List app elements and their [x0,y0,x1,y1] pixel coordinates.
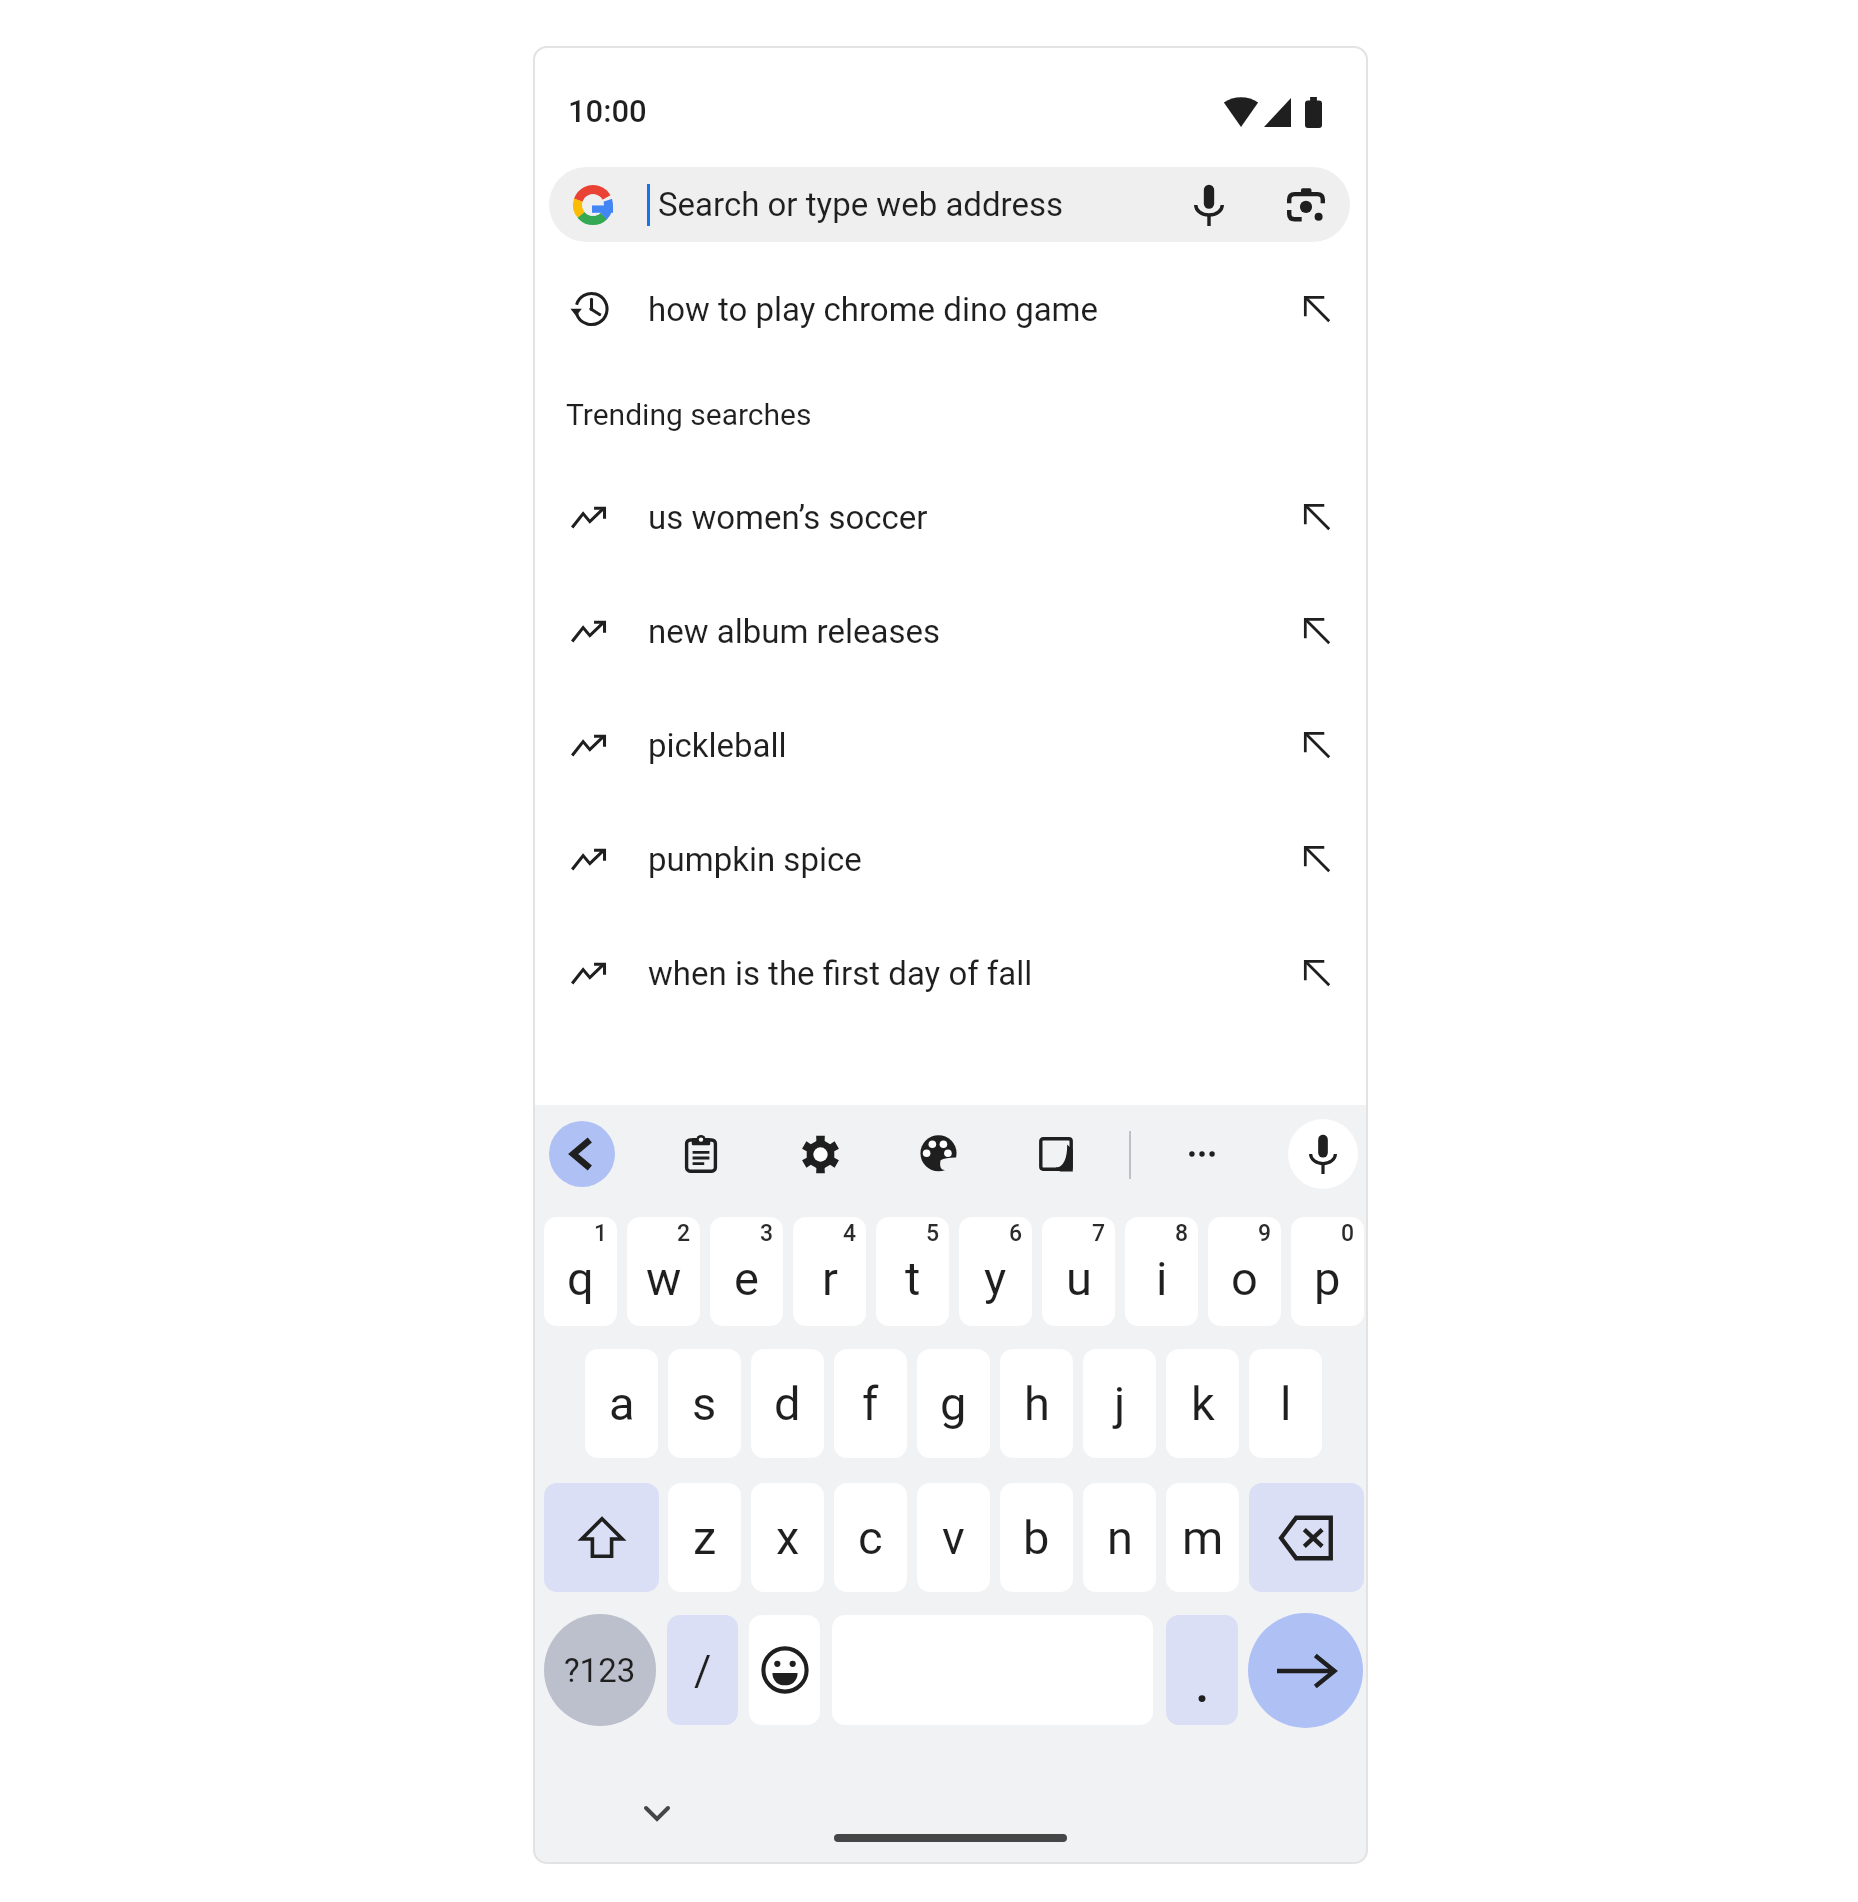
button[interactable]: / [667,1615,738,1725]
button[interactable]: g [917,1349,990,1458]
staticText: how to play chrome dino game [648,290,1099,329]
staticText: v [942,1510,965,1565]
button[interactable]: h [1000,1349,1073,1458]
staticText: 6 [1009,1220,1023,1247]
staticText: / [694,1646,712,1695]
staticText: 2 [677,1220,691,1247]
button[interactable]: u [1042,1217,1115,1326]
button[interactable]: r [793,1217,866,1326]
staticText: f [862,1376,879,1431]
staticText: 9 [1258,1220,1272,1247]
button[interactable]: m [1166,1483,1239,1592]
button[interactable] [1166,1615,1238,1725]
staticText: us women’s soccer [648,498,928,537]
button[interactable]: Search [1248,1613,1363,1728]
button[interactable]: i [1125,1217,1198,1326]
button[interactable]: Themes [905,1121,971,1187]
button[interactable]: y [959,1217,1032,1326]
staticText: d [774,1376,801,1431]
staticText: o [1231,1251,1258,1306]
staticText: 4 [843,1220,857,1247]
button[interactable]: Settings [787,1121,853,1187]
button[interactable]: us women’s soccer [533,460,1368,574]
button[interactable]: v [917,1483,990,1592]
staticText: Search or type web address [658,185,1063,224]
staticText: g [940,1376,967,1431]
staticText: j [1114,1376,1126,1431]
button[interactable]: l [1249,1349,1322,1458]
button[interactable]: Voice input [1288,1119,1358,1189]
button[interactable]: t [876,1217,949,1326]
button[interactable]: pickleball [533,688,1368,802]
button[interactable]: Search with Google Lens [1271,167,1341,242]
staticText: p [1314,1251,1341,1306]
button[interactable]: Emoji [749,1615,820,1725]
staticText: when is the first day of fall [648,954,1033,993]
staticText: c [858,1510,883,1565]
staticText: r [822,1251,838,1306]
button[interactable]: d [751,1349,824,1458]
button[interactable]: o [1208,1217,1281,1326]
staticText: pumpkin spice [648,840,862,879]
staticText: a [609,1376,635,1431]
staticText: y [984,1251,1007,1306]
staticText: k [1191,1376,1215,1431]
staticText: i [1156,1251,1168,1306]
staticText: 0 [1341,1220,1355,1247]
button[interactable]: a [585,1349,658,1458]
staticText: pickleball [648,726,787,765]
button[interactable]: w [627,1217,700,1326]
staticText: q [567,1251,594,1306]
staticText: e [734,1251,759,1306]
staticText: 3 [760,1220,774,1247]
button[interactable]: Voice search [1174,167,1244,242]
button[interactable]: f [834,1349,907,1458]
button[interactable]: c [834,1483,907,1592]
button[interactable]: n [1083,1483,1156,1592]
button[interactable]: s [668,1349,741,1458]
staticText: new album releases [648,612,940,651]
button[interactable]: e [710,1217,783,1326]
button[interactable]: More options [1169,1121,1235,1187]
button[interactable]: Search or type web address [549,167,1350,242]
staticText: 5 [926,1220,940,1247]
button[interactable]: when is the first day of fall [533,916,1368,1030]
staticText: 1 [594,1220,608,1247]
staticText: 8 [1175,1220,1189,1247]
staticText: u [1066,1251,1092,1306]
staticText: 10:00 [568,93,647,129]
button[interactable]: q [544,1217,617,1326]
button[interactable]: new album releases [533,574,1368,688]
button[interactable]: Backspace [1249,1483,1364,1592]
staticText: x [776,1510,800,1565]
staticText: h [1024,1376,1050,1431]
staticText: b [1023,1510,1050,1565]
staticText: Trending searches [566,397,812,432]
staticText: l [1280,1376,1292,1431]
button[interactable]: Shift [544,1483,659,1592]
staticText: z [693,1510,717,1565]
staticText: 7 [1092,1220,1106,1247]
staticText: m [1182,1510,1224,1565]
staticText: w [646,1251,682,1306]
staticText: n [1107,1510,1133,1565]
button[interactable]: x [751,1483,824,1592]
button[interactable]: ?123 [544,1614,656,1726]
button[interactable]: k [1166,1349,1239,1458]
button[interactable]: z [668,1483,741,1592]
staticText: ?123 [564,1651,636,1690]
button[interactable]: j [1083,1349,1156,1458]
button[interactable]: how to play chrome dino game [533,252,1368,366]
button[interactable]: p [1291,1217,1364,1326]
button[interactable]: pumpkin spice [533,802,1368,916]
staticText: s [692,1376,717,1431]
button[interactable]: Stickers [1023,1121,1089,1187]
button[interactable]: Clipboard [668,1121,734,1187]
staticText: t [905,1251,921,1306]
button[interactable]: b [1000,1483,1073,1592]
button[interactable]: Back [549,1121,615,1187]
